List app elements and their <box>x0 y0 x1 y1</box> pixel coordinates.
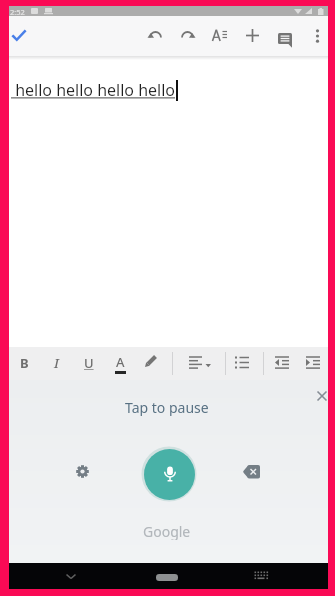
staticText: Google <box>143 522 191 540</box>
button[interactable] <box>315 29 320 43</box>
staticText: 2:52 <box>10 7 25 17</box>
button[interactable] <box>317 391 327 401</box>
button[interactable]: I <box>49 352 64 374</box>
button[interactable] <box>254 571 268 581</box>
button[interactable] <box>156 574 178 581</box>
button[interactable] <box>189 356 212 371</box>
button[interactable] <box>235 356 250 371</box>
button[interactable] <box>12 30 28 43</box>
button[interactable]: B <box>17 352 32 374</box>
button[interactable] <box>75 464 90 479</box>
button[interactable] <box>278 33 293 49</box>
button[interactable] <box>306 356 321 371</box>
staticText: U <box>84 354 94 372</box>
staticText: hello hello hello hello <box>11 79 176 101</box>
button[interactable] <box>66 574 76 579</box>
staticText: B <box>20 354 29 372</box>
button[interactable] <box>246 29 259 42</box>
staticText: I <box>54 354 59 372</box>
button[interactable] <box>243 465 262 479</box>
button[interactable] <box>212 29 228 42</box>
button[interactable] <box>148 29 163 42</box>
button[interactable] <box>180 29 195 42</box>
button[interactable]: A <box>113 351 128 373</box>
button[interactable]: Tap to pause <box>125 398 209 416</box>
button[interactable]: U <box>81 352 96 374</box>
button[interactable] <box>144 354 159 369</box>
staticText: A <box>116 353 125 371</box>
button[interactable] <box>144 449 195 500</box>
button[interactable] <box>275 356 290 371</box>
